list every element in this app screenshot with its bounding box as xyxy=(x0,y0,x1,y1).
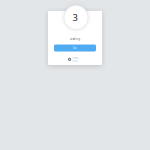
staticText: 3 xyxy=(72,11,77,24)
staticText: link xyxy=(72,59,77,63)
button[interactable]: Go xyxy=(54,44,96,51)
button[interactable]: Name xyxy=(68,56,79,63)
staticText: Name xyxy=(72,56,79,59)
staticText: Loading xyxy=(69,37,80,41)
staticText: Go xyxy=(73,46,77,50)
